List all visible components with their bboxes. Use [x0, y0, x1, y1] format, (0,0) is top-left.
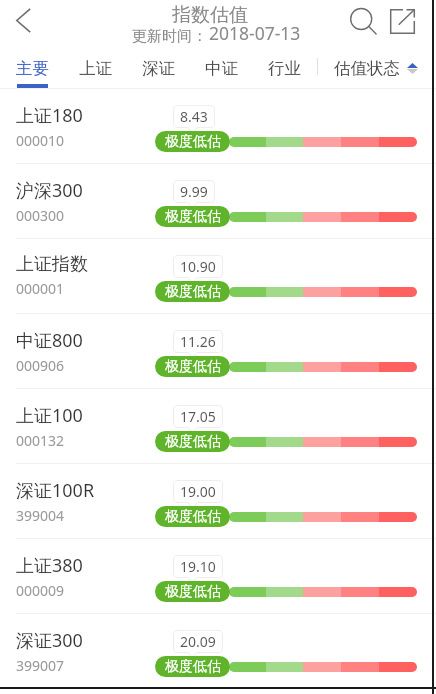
staticText: 极度低估 — [165, 283, 221, 301]
staticText: 399007 — [16, 656, 65, 675]
staticText: 中证800 — [16, 328, 83, 353]
staticText: 极度低估 — [165, 208, 221, 226]
button[interactable]: 深证300 — [0, 614, 436, 689]
staticText: 000010 — [16, 131, 65, 150]
staticText: 估值状态 — [334, 58, 400, 79]
staticText: 极度低估 — [165, 133, 221, 151]
staticText: 上证 — [79, 58, 112, 79]
staticText: 指数估值 — [172, 3, 248, 27]
button[interactable]: 深证100R — [0, 464, 436, 539]
staticText: 极度低估 — [165, 658, 221, 676]
staticText: 极度低估 — [165, 433, 221, 451]
button[interactable]: 上证 — [74, 46, 116, 89]
staticText: 深证 — [142, 58, 175, 79]
staticText: 11.26 — [180, 332, 216, 351]
button[interactable]: 主要 — [11, 46, 53, 89]
button[interactable]: Open in new window — [382, 0, 422, 44]
staticText: 主要 — [16, 58, 49, 79]
staticText: 上证指数 — [16, 253, 88, 276]
staticText: 000300 — [16, 206, 65, 225]
staticText: 极度低估 — [165, 583, 221, 601]
button[interactable]: 上证100 — [0, 389, 436, 464]
staticText: 沪深300 — [16, 178, 83, 203]
button[interactable]: 深证 — [137, 46, 179, 89]
staticText: 000132 — [16, 431, 65, 450]
button[interactable]: 上证380 — [0, 539, 436, 614]
button[interactable]: 沪深300 — [0, 164, 436, 239]
staticText: 399004 — [16, 506, 65, 525]
button[interactable]: 估值状态 — [334, 46, 418, 89]
button[interactable]: 行业 — [263, 46, 305, 89]
button[interactable]: 中证 — [200, 46, 242, 89]
button[interactable]: 上证180 — [0, 89, 436, 164]
staticText: 中证 — [205, 58, 238, 79]
staticText: 2018-07-13 — [209, 21, 301, 45]
staticText: 行业 — [268, 58, 301, 79]
staticText: 19.00 — [180, 482, 216, 501]
staticText: 19.10 — [180, 557, 216, 576]
staticText: 深证300 — [16, 628, 83, 653]
staticText: 上证100 — [16, 403, 83, 428]
staticText: 上证380 — [16, 553, 83, 578]
staticText: 000001 — [16, 279, 65, 298]
button[interactable]: 中证800 — [0, 314, 436, 389]
staticText: 极度低估 — [165, 508, 221, 526]
button[interactable]: Search — [344, 0, 384, 46]
staticText: 更新时间： — [132, 27, 207, 46]
staticText: 极度低估 — [165, 358, 221, 376]
button[interactable]: 上证指数 — [0, 239, 436, 314]
staticText: 000009 — [16, 581, 65, 600]
staticText: 深证100R — [16, 478, 95, 503]
staticText: 17.05 — [180, 407, 216, 426]
staticText: 8.43 — [180, 107, 208, 126]
staticText: 000906 — [16, 356, 65, 375]
staticText: 20.09 — [180, 632, 216, 651]
staticText: 10.90 — [180, 257, 216, 276]
staticText: 上证180 — [16, 103, 83, 128]
button[interactable]: Back — [0, 0, 46, 46]
staticText: 9.99 — [180, 182, 208, 201]
